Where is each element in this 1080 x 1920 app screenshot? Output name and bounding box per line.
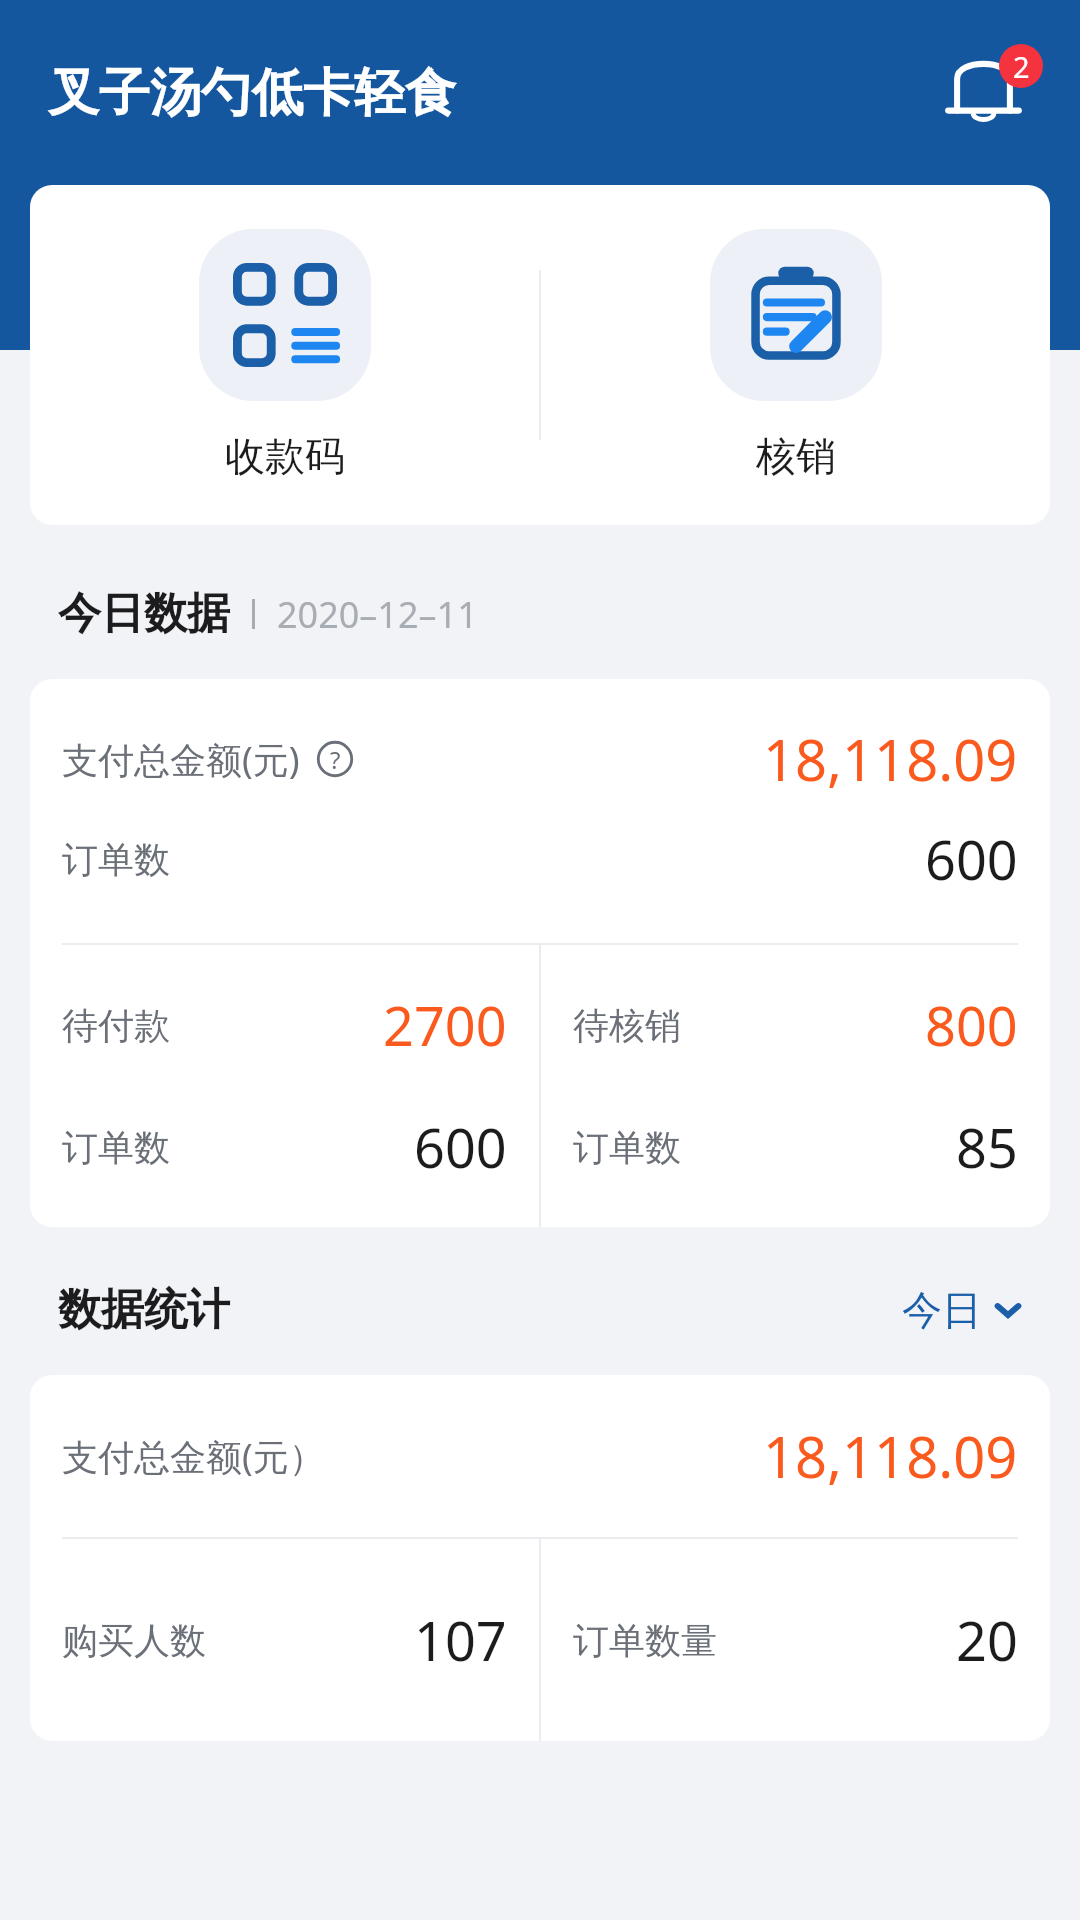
staticText: 收款码: [225, 431, 345, 481]
staticText: 600: [925, 822, 1018, 896]
button[interactable]: 核销: [541, 185, 1050, 525]
staticText: 订单数量: [573, 1618, 717, 1663]
staticText: 购买人数: [62, 1618, 206, 1663]
button[interactable]: Notifications: [934, 38, 1044, 148]
staticText: 订单数: [62, 1125, 170, 1170]
staticText: 待付款: [62, 1003, 170, 1048]
staticText: 85: [956, 1110, 1018, 1184]
staticText: 支付总金额(元）: [62, 1432, 325, 1481]
staticText: 18,118.09: [763, 1418, 1018, 1494]
staticText: 2020–12–11: [277, 590, 478, 639]
staticText: 18,118.09: [763, 721, 1018, 797]
staticText: 数据统计: [58, 1283, 230, 1337]
button[interactable]: 今日: [902, 1285, 1022, 1335]
staticText: 2: [1013, 47, 1030, 86]
staticText: 今日: [902, 1285, 982, 1335]
staticText: 今日数据: [58, 587, 230, 641]
button[interactable]: Help: [316, 740, 354, 778]
staticText: ?: [330, 743, 341, 776]
staticText: 800: [925, 988, 1018, 1062]
staticText: 2700: [383, 988, 507, 1062]
staticText: 支付总金额(元): [62, 735, 300, 784]
staticText: 订单数: [573, 1125, 681, 1170]
staticText: 叉子汤勺低卡轻食: [48, 61, 456, 125]
staticText: 107: [414, 1603, 507, 1677]
staticText: 核销: [756, 431, 836, 481]
staticText: 20: [956, 1603, 1018, 1677]
staticText: 待核销: [573, 1003, 681, 1048]
staticText: 订单数: [62, 837, 170, 882]
staticText: 600: [414, 1110, 507, 1184]
button[interactable]: 收款码: [30, 185, 539, 525]
